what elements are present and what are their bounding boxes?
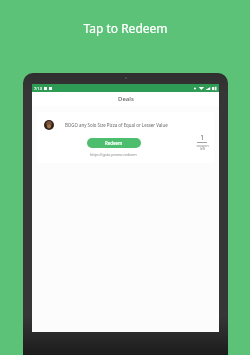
staticText: 1 xyxy=(200,133,204,142)
staticText: 7:13 xyxy=(34,86,42,91)
staticText: https://goto.promo.redeem xyxy=(90,152,137,157)
staticText: Tap to Redeem xyxy=(83,20,168,36)
button[interactable]: Redeem xyxy=(87,138,141,148)
button[interactable]: Merchant logo xyxy=(37,112,214,163)
staticText: Redeem xyxy=(105,140,123,146)
staticText: coupon left xyxy=(196,143,209,151)
staticText: BOGO any Solo Size Pizza of Equal or Les… xyxy=(65,122,168,128)
other: Merchant logo xyxy=(44,120,54,130)
staticText: Deals xyxy=(118,95,134,103)
